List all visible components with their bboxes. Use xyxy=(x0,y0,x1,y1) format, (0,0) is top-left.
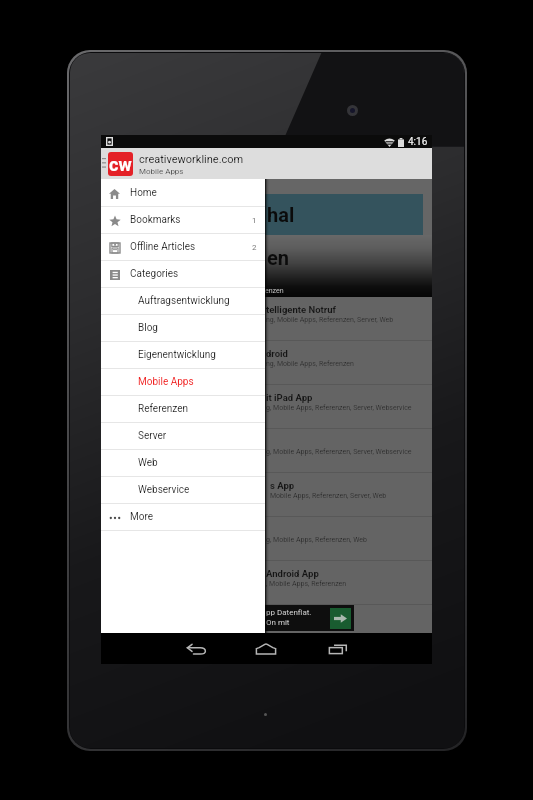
button[interactable]: Home xyxy=(241,633,291,664)
button[interactable]: Bookmarks xyxy=(101,207,265,233)
button[interactable]: Referenzen xyxy=(101,396,265,422)
button[interactable]: Web xyxy=(101,450,265,476)
staticText: 4:16 xyxy=(408,136,428,148)
staticText: On mit xyxy=(266,618,290,627)
button[interactable]: Open navigation drawer xyxy=(101,148,432,179)
staticText: Eigenentwicklung xyxy=(138,349,216,361)
button[interactable]: Eigenentwicklung xyxy=(101,342,265,368)
staticText: 2 xyxy=(252,243,257,252)
staticText: ng, Mobile Apps, Referenzen xyxy=(266,360,354,368)
button[interactable]: Home xyxy=(101,180,265,206)
staticText: Server xyxy=(138,430,167,442)
staticText: Auftragsentwicklung xyxy=(138,295,230,307)
staticText: g, Mobile Apps, Referenzen, Server, Webs… xyxy=(266,404,412,412)
staticText: en xyxy=(267,246,290,269)
button[interactable]: pp Datenflat. xyxy=(101,605,354,631)
staticText: ng, Mobile Apps, Referenzen, Server, Web xyxy=(266,316,394,324)
button[interactable]: Android App xyxy=(101,561,432,604)
button[interactable]: it iPad App xyxy=(101,385,432,428)
staticText: Referenzen xyxy=(138,403,188,415)
staticText: it iPad App xyxy=(266,392,313,403)
staticText: Blog xyxy=(138,322,158,334)
button[interactable]: More xyxy=(101,504,265,530)
staticText: More xyxy=(130,511,154,523)
button[interactable]: Categories xyxy=(101,261,265,287)
staticText: g, Mobile Apps, Referenzen, Web xyxy=(266,536,367,544)
staticText: , Mobile Apps, Referenzen xyxy=(266,580,347,588)
staticText: Mobile Apps xyxy=(138,376,194,388)
staticText: Offline Articles xyxy=(130,241,196,253)
button[interactable]: Back xyxy=(171,633,221,664)
staticText: Web xyxy=(138,457,158,469)
button[interactable]: Mobile Apps xyxy=(101,369,265,395)
button[interactable]: Server xyxy=(101,423,265,449)
button[interactable]: Blog xyxy=(101,315,265,341)
other: Mehr erfahren xyxy=(330,608,351,629)
button[interactable]: g, Mobile Apps, Referenzen, Web xyxy=(101,517,432,560)
staticText: Categories xyxy=(130,268,179,280)
staticText: Mobile Apps, Referenzen, Server, Web xyxy=(270,492,387,500)
button[interactable]: Recent apps xyxy=(313,633,363,664)
staticText: Home xyxy=(130,187,157,199)
button[interactable]: s App xyxy=(101,473,432,516)
button[interactable]: Offline Articles xyxy=(101,234,265,260)
staticText: 1 xyxy=(252,216,257,225)
staticText: Mobile Apps xyxy=(139,167,184,176)
button[interactable]: telligente Notruf xyxy=(101,297,432,340)
button[interactable]: droid xyxy=(101,341,432,384)
button[interactable]: Webservice xyxy=(101,477,265,503)
staticText: hal xyxy=(267,203,295,226)
staticText: creativeworkline.com xyxy=(139,153,244,166)
staticText: pp Datenflat. xyxy=(266,608,312,617)
staticText: telligente Notruf xyxy=(266,304,336,315)
staticText: cw xyxy=(109,154,132,175)
button[interactable]: g, Mobile Apps, Referenzen, Server, Webs… xyxy=(101,429,432,472)
button[interactable]: Auftragsentwicklung xyxy=(101,288,265,314)
staticText: g, Mobile Apps, Referenzen, Server, Webs… xyxy=(266,448,412,456)
staticText: droid xyxy=(266,348,288,359)
staticText: Bookmarks xyxy=(130,214,181,226)
staticText: s App xyxy=(270,480,295,491)
staticText: Android App xyxy=(266,568,319,579)
staticText: Webservice xyxy=(138,484,190,496)
staticText: enzen xyxy=(265,287,284,295)
